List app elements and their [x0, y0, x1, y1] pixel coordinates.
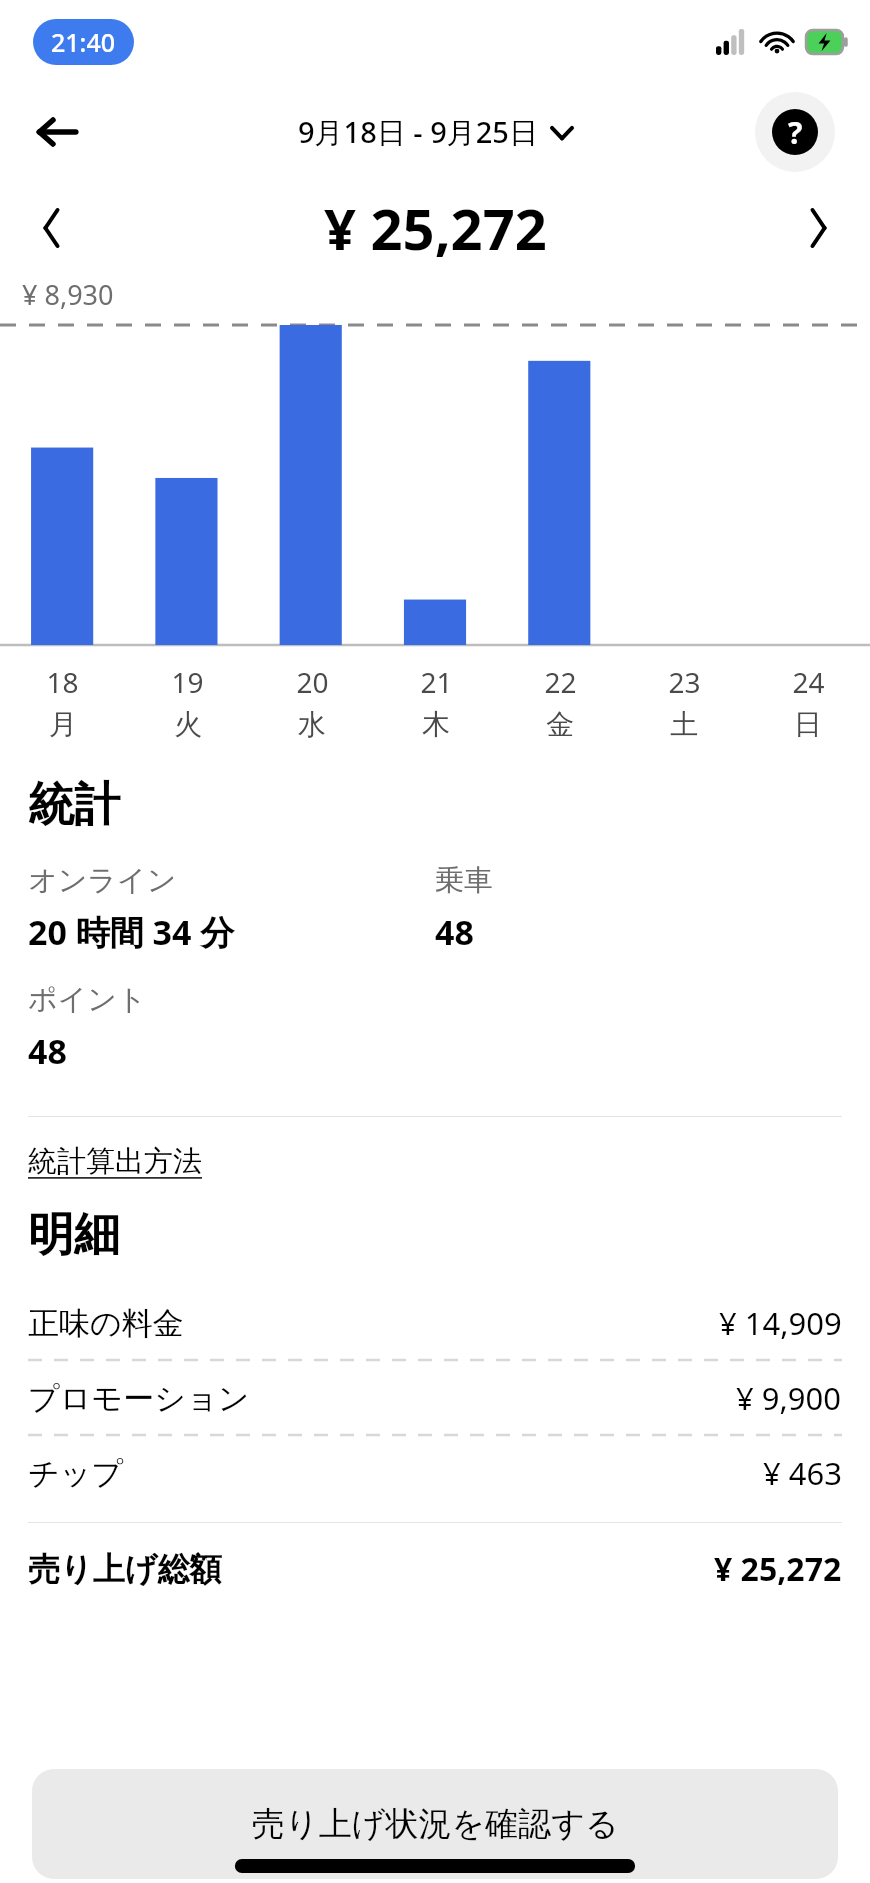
staticText: ¥ 25,272: [714, 1547, 842, 1591]
staticText: 21: [420, 663, 453, 701]
staticText: 土: [670, 707, 698, 742]
staticText: チップ: [28, 1454, 124, 1493]
staticText: 24: [792, 663, 825, 701]
staticText: 9月18日 - 9月25日: [298, 112, 538, 152]
staticText: 水: [298, 707, 326, 742]
staticText: 22: [544, 663, 577, 701]
staticText: 正味の料金: [28, 1304, 184, 1343]
button[interactable]: Previous week: [22, 198, 82, 258]
staticText: 統計算出方法: [28, 1143, 202, 1180]
staticText: 日: [794, 707, 822, 742]
staticText: 売り上げ総額: [28, 1549, 222, 1589]
staticText: 20: [296, 663, 329, 701]
staticText: 乗車: [435, 862, 493, 899]
button[interactable]: Help: [755, 92, 835, 172]
staticText: オンライン: [28, 862, 177, 899]
button[interactable]: チップ: [28, 1436, 842, 1510]
button[interactable]: Next week: [788, 198, 848, 258]
staticText: 明細: [28, 1206, 120, 1264]
staticText: ¥ 8,930: [22, 276, 114, 313]
button[interactable]: Back: [26, 101, 88, 163]
staticText: 48: [28, 1028, 67, 1074]
button[interactable]: 売り上げ状況を確認する: [32, 1769, 838, 1879]
staticText: プロモーション: [28, 1379, 250, 1418]
staticText: 20 時間 34 分: [28, 909, 235, 955]
staticText: 18: [46, 663, 79, 701]
button[interactable]: プロモーション: [28, 1361, 842, 1435]
staticText: ¥ 14,909: [719, 1302, 842, 1344]
staticText: ¥ 463: [763, 1452, 842, 1494]
staticText: 金: [546, 707, 574, 742]
button[interactable]: 統計算出方法: [28, 1143, 202, 1180]
button[interactable]: 9月18日 - 9月25日: [298, 112, 572, 152]
staticText: 48: [435, 909, 474, 955]
staticText: 統計: [28, 776, 120, 834]
staticText: 月: [49, 707, 77, 742]
staticText: 火: [174, 707, 202, 742]
button[interactable]: 正味の料金: [28, 1286, 842, 1360]
staticText: 23: [668, 663, 701, 701]
staticText: ¥ 25,272: [324, 190, 547, 266]
staticText: 売り上げ状況を確認する: [252, 1803, 619, 1845]
staticText: ¥ 9,900: [736, 1377, 842, 1419]
staticText: 19: [171, 663, 204, 701]
staticText: 木: [422, 707, 450, 742]
staticText: 21:40: [51, 25, 116, 59]
staticText: ポイント: [28, 981, 147, 1018]
button[interactable]: 売り上げ総額: [28, 1535, 842, 1603]
staticText: ?: [788, 112, 803, 153]
